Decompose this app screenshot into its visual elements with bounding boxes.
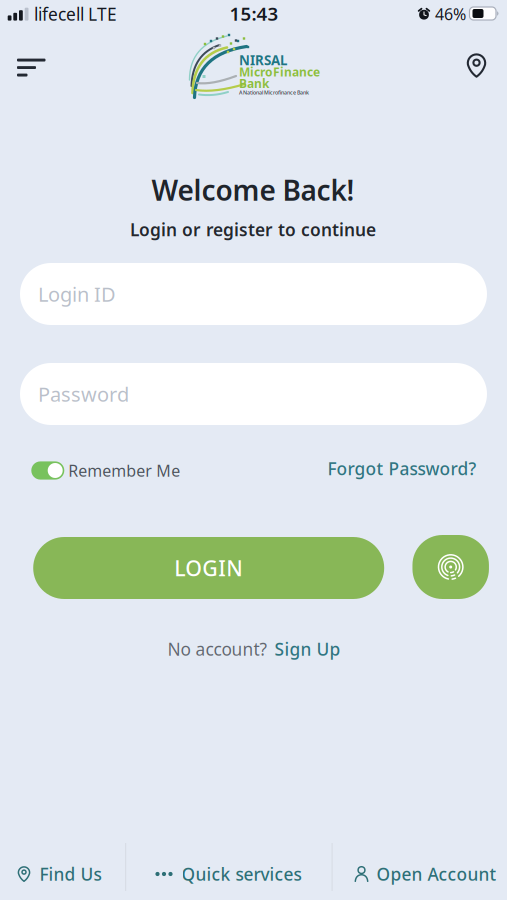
staticText: Login or register to continue <box>130 218 376 241</box>
staticText: Password <box>38 381 129 407</box>
button[interactable]: Find Us <box>0 846 118 900</box>
staticText: 46% <box>435 3 466 25</box>
button[interactable]: Quick services <box>129 846 327 900</box>
button[interactable]: Open Account <box>341 846 507 900</box>
staticText: Bank <box>239 75 269 91</box>
staticText: Forgot Password? <box>327 457 476 480</box>
button[interactable]: LOGIN <box>33 537 384 599</box>
staticText: No account? <box>167 637 267 660</box>
staticText: Login ID <box>38 281 116 307</box>
staticText: Sign Up <box>274 637 340 660</box>
staticText: Welcome Back! <box>151 171 354 209</box>
staticText: LOGIN <box>174 554 243 582</box>
button[interactable]: Remember Me <box>31 453 201 487</box>
staticText: Remember Me <box>68 460 180 481</box>
button[interactable]: Login with fingerprint <box>412 535 489 599</box>
button[interactable]: Branch locator <box>463 48 489 80</box>
staticText: 15:43 <box>229 1 278 26</box>
staticText: LTE <box>88 2 117 25</box>
staticText: NIRSAL <box>239 51 287 69</box>
staticText: MicroFinance <box>239 64 320 80</box>
staticText: lifecell <box>34 2 84 25</box>
button[interactable]: Forgot Password? <box>276 453 476 483</box>
button[interactable]: Sign Up <box>274 637 340 660</box>
staticText: Quick services <box>181 862 301 885</box>
staticText: Open Account <box>376 862 496 885</box>
button[interactable]: Menu <box>14 52 50 83</box>
staticText: A National Microfinance Bank <box>239 89 309 96</box>
staticText: Find Us <box>39 862 101 885</box>
